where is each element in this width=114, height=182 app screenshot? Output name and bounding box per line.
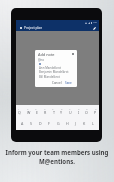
staticText: S bbox=[30, 121, 32, 126]
staticText: @na bbox=[38, 58, 44, 62]
staticText: 0 bbox=[95, 107, 97, 110]
button[interactable]: Ann Mandelbrot bbox=[35, 66, 77, 70]
staticText: 100 bbox=[93, 21, 97, 24]
button[interactable]: 6 bbox=[61, 107, 63, 110]
staticText: L bbox=[92, 121, 94, 126]
staticText: H bbox=[66, 121, 69, 126]
button[interactable]: L bbox=[92, 121, 94, 126]
staticText: A bbox=[21, 121, 24, 126]
staticText: 1 bbox=[18, 107, 20, 110]
staticText: J bbox=[75, 121, 76, 126]
staticText: Project plan bbox=[24, 26, 43, 30]
staticText: Benjamin Mandelbrot bbox=[39, 70, 69, 74]
button[interactable]: 1 bbox=[18, 107, 20, 110]
staticText: Y bbox=[60, 110, 63, 115]
staticText: I bbox=[78, 110, 80, 115]
staticText: F bbox=[48, 121, 50, 126]
button[interactable]: 5 bbox=[52, 107, 54, 110]
button[interactable]: 3 bbox=[35, 107, 37, 110]
staticText: P bbox=[94, 110, 97, 115]
staticText: U bbox=[69, 110, 72, 115]
staticText: 5 bbox=[52, 107, 54, 110]
button[interactable]: P bbox=[94, 110, 97, 115]
button[interactable]: O bbox=[85, 110, 88, 115]
staticText: Q bbox=[18, 110, 21, 115]
button[interactable]: G bbox=[57, 121, 60, 126]
staticText: O bbox=[85, 110, 88, 115]
button[interactable]: Help bbox=[71, 52, 75, 56]
staticText: Bill Mandelbrot bbox=[39, 75, 60, 79]
button[interactable]: F bbox=[48, 121, 50, 126]
button[interactable]: I bbox=[78, 110, 80, 115]
staticText: K bbox=[83, 121, 86, 126]
button[interactable]: 7 bbox=[69, 107, 71, 110]
button[interactable]: Edit bbox=[92, 26, 97, 31]
staticText: T bbox=[53, 110, 55, 115]
staticText: 7 bbox=[69, 107, 71, 110]
staticText: 2 bbox=[27, 107, 29, 110]
button[interactable]: E bbox=[36, 110, 38, 115]
button[interactable]: 2 bbox=[27, 107, 29, 110]
button[interactable]: J bbox=[75, 121, 76, 126]
staticText: Save bbox=[65, 81, 72, 84]
staticText: 3 bbox=[35, 107, 37, 110]
staticText: Inform your team members using M@entions… bbox=[0, 148, 114, 166]
button[interactable]: T bbox=[53, 110, 55, 115]
button[interactable]: Q bbox=[18, 110, 21, 115]
button[interactable]: 8 bbox=[78, 107, 80, 110]
button[interactable]: U bbox=[69, 110, 72, 115]
button[interactable]: Y bbox=[60, 110, 63, 115]
button[interactable]: Cancel bbox=[51, 80, 63, 85]
staticText: 4 bbox=[44, 107, 46, 110]
button[interactable]: W bbox=[27, 110, 31, 115]
button[interactable]: R bbox=[44, 110, 47, 115]
staticText: 9 bbox=[86, 107, 88, 110]
staticText: E bbox=[36, 110, 38, 115]
staticText: W bbox=[27, 110, 31, 115]
button[interactable]: Save bbox=[64, 80, 73, 85]
button[interactable]: A bbox=[21, 121, 24, 126]
button[interactable]: Close bbox=[18, 25, 23, 30]
staticText: 6 bbox=[61, 107, 63, 110]
staticText: R bbox=[44, 110, 47, 115]
staticText: Add note bbox=[38, 52, 55, 57]
button[interactable]: D bbox=[39, 121, 42, 126]
staticText: G bbox=[57, 121, 60, 126]
button[interactable]: 9 bbox=[86, 107, 88, 110]
staticText: Ann Mandelbrot bbox=[39, 66, 62, 70]
button[interactable]: K bbox=[83, 121, 86, 126]
button[interactable]: Benjamin Mandelbrot bbox=[35, 70, 77, 74]
button[interactable]: 0 bbox=[95, 107, 97, 110]
button[interactable]: 4 bbox=[44, 107, 46, 110]
button[interactable]: Bill Mandelbrot bbox=[35, 75, 77, 79]
button[interactable]: H bbox=[66, 121, 69, 126]
button[interactable]: S bbox=[30, 121, 32, 126]
staticText: D bbox=[39, 121, 42, 126]
staticText: 8 bbox=[78, 107, 80, 110]
staticText: Cancel bbox=[52, 81, 62, 84]
